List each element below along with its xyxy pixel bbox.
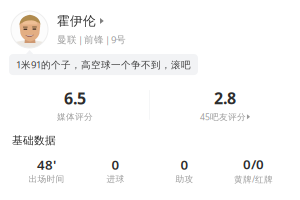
- staticText: 2.8: [214, 87, 236, 109]
- staticText: 1米91的个子，高空球一个争不到，滚吧: [16, 58, 191, 71]
- staticText: 6.5: [64, 87, 86, 109]
- staticText: 黄牌/红牌: [234, 173, 273, 185]
- staticText: 0: [180, 156, 188, 174]
- staticText: 48': [37, 156, 56, 174]
- staticText: 基础数据: [12, 134, 56, 147]
- staticText: 霍伊伦: [57, 13, 96, 29]
- staticText: 出场时间: [28, 174, 64, 185]
- staticText: 曼联 | 前锋 | 9号: [57, 33, 126, 46]
- staticText: 进球: [106, 174, 124, 185]
- staticText: 0: [111, 156, 119, 174]
- staticText: 0/0: [243, 155, 264, 173]
- staticText: 媒体评分: [57, 111, 93, 122]
- staticText: 45吧友评分: [200, 111, 246, 123]
- staticText: 助攻: [175, 174, 193, 185]
- button[interactable]: 2.8: [150, 87, 300, 123]
- button[interactable]: 霍伊伦: [0, 0, 300, 48]
